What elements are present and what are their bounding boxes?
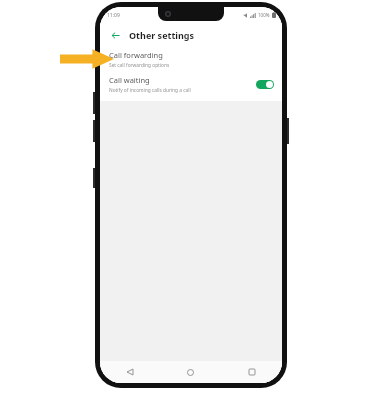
staticText: Notify of incoming calls during a call	[109, 87, 191, 94]
staticText: Call forwarding	[109, 50, 163, 60]
staticText: 11:09	[107, 12, 120, 19]
button[interactable]: Home	[160, 361, 221, 383]
button[interactable]: Call waiting toggle	[256, 80, 274, 89]
staticText: Call waiting	[109, 75, 150, 85]
staticText: Set call forwarding options	[109, 62, 170, 69]
staticText: Other settings	[129, 29, 195, 41]
button[interactable]: Recents	[221, 361, 282, 383]
button[interactable]: Back	[108, 28, 122, 42]
button[interactable]: Back	[100, 361, 160, 383]
button[interactable]: Call waiting	[100, 72, 282, 97]
staticText: 100%	[258, 12, 270, 18]
button[interactable]: Call forwarding	[100, 47, 282, 72]
